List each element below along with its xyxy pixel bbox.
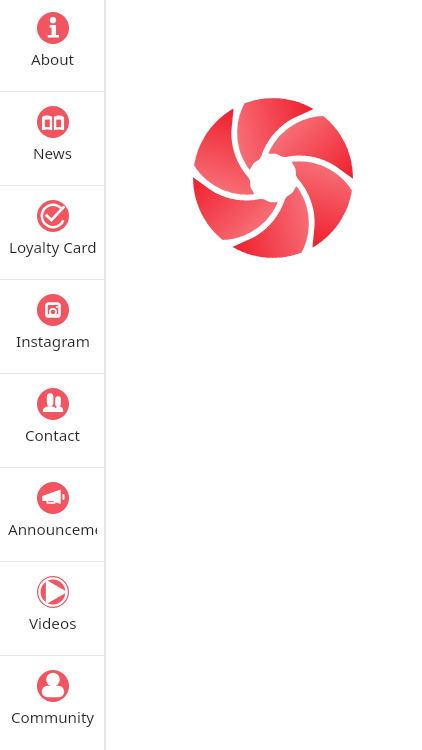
staticText: Loyalty Card bbox=[9, 237, 97, 258]
button[interactable]: News bbox=[0, 92, 105, 185]
button[interactable]: About bbox=[0, 0, 105, 91]
button[interactable]: Contact bbox=[0, 374, 105, 467]
button[interactable]: Announcements bbox=[0, 468, 105, 561]
button[interactable]: Instagram bbox=[0, 280, 105, 373]
staticText: Community bbox=[11, 707, 95, 728]
button[interactable]: Loyalty Card bbox=[0, 186, 105, 279]
staticText: News bbox=[33, 143, 73, 164]
staticText: Contact bbox=[25, 425, 80, 446]
staticText: About bbox=[31, 49, 75, 70]
staticText: Announcements bbox=[8, 519, 97, 540]
staticText: Instagram bbox=[16, 331, 90, 352]
staticText: Videos bbox=[29, 613, 77, 634]
button[interactable]: Videos bbox=[0, 562, 105, 655]
button[interactable]: Community bbox=[0, 656, 105, 748]
